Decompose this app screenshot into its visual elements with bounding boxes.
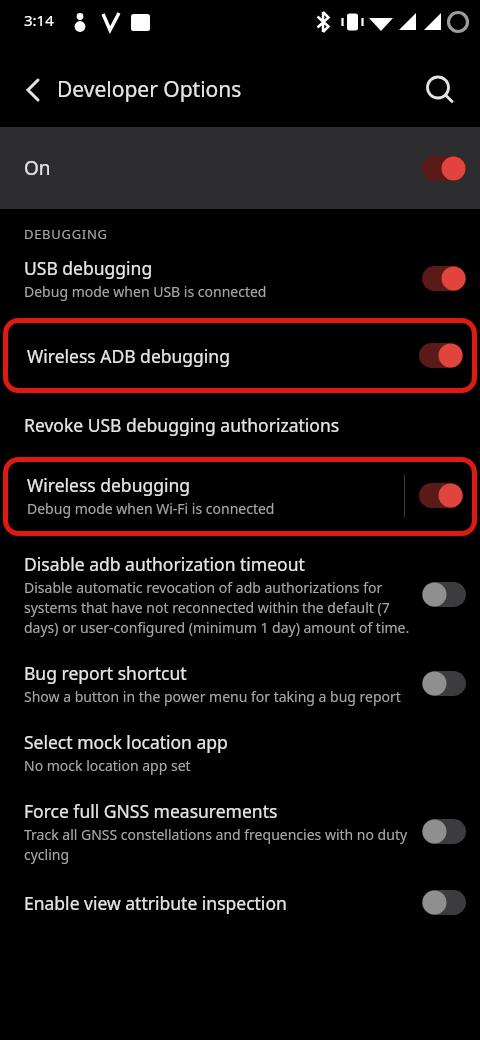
staticText: Select mock location app xyxy=(24,730,228,754)
button[interactable]: Select mock location app xyxy=(0,722,480,783)
staticText: Bug report shortcut xyxy=(24,661,187,685)
staticText: USB debugging xyxy=(24,256,153,280)
staticText: Debug mode when Wi-Fi is connected xyxy=(27,499,275,518)
button[interactable]: On xyxy=(0,127,480,209)
button[interactable]: Back xyxy=(9,66,57,114)
staticText: DEBUGGING xyxy=(24,225,108,243)
staticText: Disable automatic revocation of adb auth… xyxy=(24,578,412,637)
staticText: On xyxy=(24,155,422,181)
staticText: Force full GNSS measurements xyxy=(24,799,278,823)
staticText: 3:14 xyxy=(24,10,54,30)
button[interactable]: Wireless ADB debugging xyxy=(3,318,477,393)
staticText: Disable adb authorization timeout xyxy=(24,552,305,576)
staticText: Enable view attribute inspection xyxy=(24,891,287,915)
staticText: Wireless debugging xyxy=(27,473,191,497)
button[interactable]: Search xyxy=(416,66,464,114)
staticText: Developer Options xyxy=(57,75,242,104)
staticText: Revoke USB debugging authorizations xyxy=(24,413,340,437)
button[interactable]: Revoke USB debugging authorizations xyxy=(0,393,480,457)
staticText: No mock location app set xyxy=(24,756,191,775)
button[interactable]: USB debugging xyxy=(0,256,480,310)
button[interactable]: Disable adb authorization timeout xyxy=(0,544,480,645)
staticText: Show a button in the power menu for taki… xyxy=(24,687,401,706)
staticText: Wireless ADB debugging xyxy=(27,344,230,368)
button[interactable]: Enable view attribute inspection xyxy=(0,882,480,923)
staticText: Track all GNSS constellations and freque… xyxy=(24,825,412,864)
staticText: Debug mode when USB is connected xyxy=(24,282,267,301)
button[interactable]: Wireless debugging xyxy=(3,457,477,536)
button[interactable]: Bug report shortcut xyxy=(0,653,480,714)
button[interactable]: Force full GNSS measurements xyxy=(0,791,480,872)
